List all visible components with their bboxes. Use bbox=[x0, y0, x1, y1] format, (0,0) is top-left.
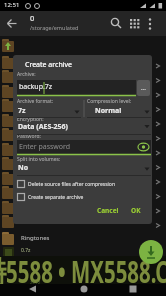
staticText: ... bbox=[141, 84, 146, 92]
staticText: 7z bbox=[18, 106, 26, 116]
staticText: Create separate archive bbox=[28, 194, 84, 201]
button[interactable]: Delete source files after compression bbox=[16, 179, 150, 190]
button[interactable] bbox=[126, 14, 144, 34]
button[interactable]: Ringtones bbox=[0, 230, 166, 245]
staticText: Encryption: bbox=[17, 116, 44, 123]
staticText: Archive format: bbox=[17, 98, 54, 105]
button[interactable] bbox=[124, 284, 142, 296]
button[interactable] bbox=[107, 14, 125, 34]
staticText: Normal bbox=[95, 106, 122, 116]
staticText: backup.7z bbox=[19, 82, 53, 92]
button[interactable]: Enter password bbox=[17, 140, 151, 154]
button[interactable]: No bbox=[17, 163, 151, 175]
staticText: Password: bbox=[17, 133, 41, 140]
staticText: Enter password bbox=[19, 142, 71, 152]
button[interactable]: 7z bbox=[17, 106, 81, 118]
button[interactable]: Data (AES-256) bbox=[17, 122, 151, 134]
button[interactable] bbox=[141, 14, 159, 34]
staticText: 0.7z bbox=[21, 247, 31, 254]
button[interactable] bbox=[75, 284, 93, 296]
button[interactable]: Cancel bbox=[93, 203, 123, 218]
staticText: 0 bbox=[30, 13, 35, 23]
staticText: 12:51 bbox=[4, 1, 20, 9]
staticText: Create archive bbox=[25, 60, 73, 70]
button[interactable] bbox=[139, 240, 163, 264]
staticText: Ringtones bbox=[21, 234, 50, 242]
staticText: 23.72 bbox=[30, 280, 41, 285]
staticText: Split into volumes: bbox=[17, 156, 61, 163]
staticText: No bbox=[18, 163, 29, 173]
button[interactable]: ... bbox=[137, 80, 150, 96]
button[interactable]: Normal bbox=[87, 106, 151, 118]
staticText: Cancel bbox=[97, 206, 119, 215]
button[interactable] bbox=[2, 14, 22, 34]
staticText: Archive: bbox=[17, 71, 36, 78]
staticText: Delete source files after compression bbox=[28, 181, 115, 188]
staticText: OK bbox=[131, 206, 141, 215]
button[interactable]: Create separate archive bbox=[16, 192, 150, 203]
button[interactable] bbox=[24, 284, 42, 296]
button[interactable] bbox=[0, 256, 166, 284]
staticText: /storage/emulated bbox=[30, 24, 79, 31]
button[interactable]: OK bbox=[126, 203, 146, 218]
staticText: Compression level: bbox=[87, 98, 132, 105]
staticText: Data (AES-256) bbox=[18, 122, 68, 132]
